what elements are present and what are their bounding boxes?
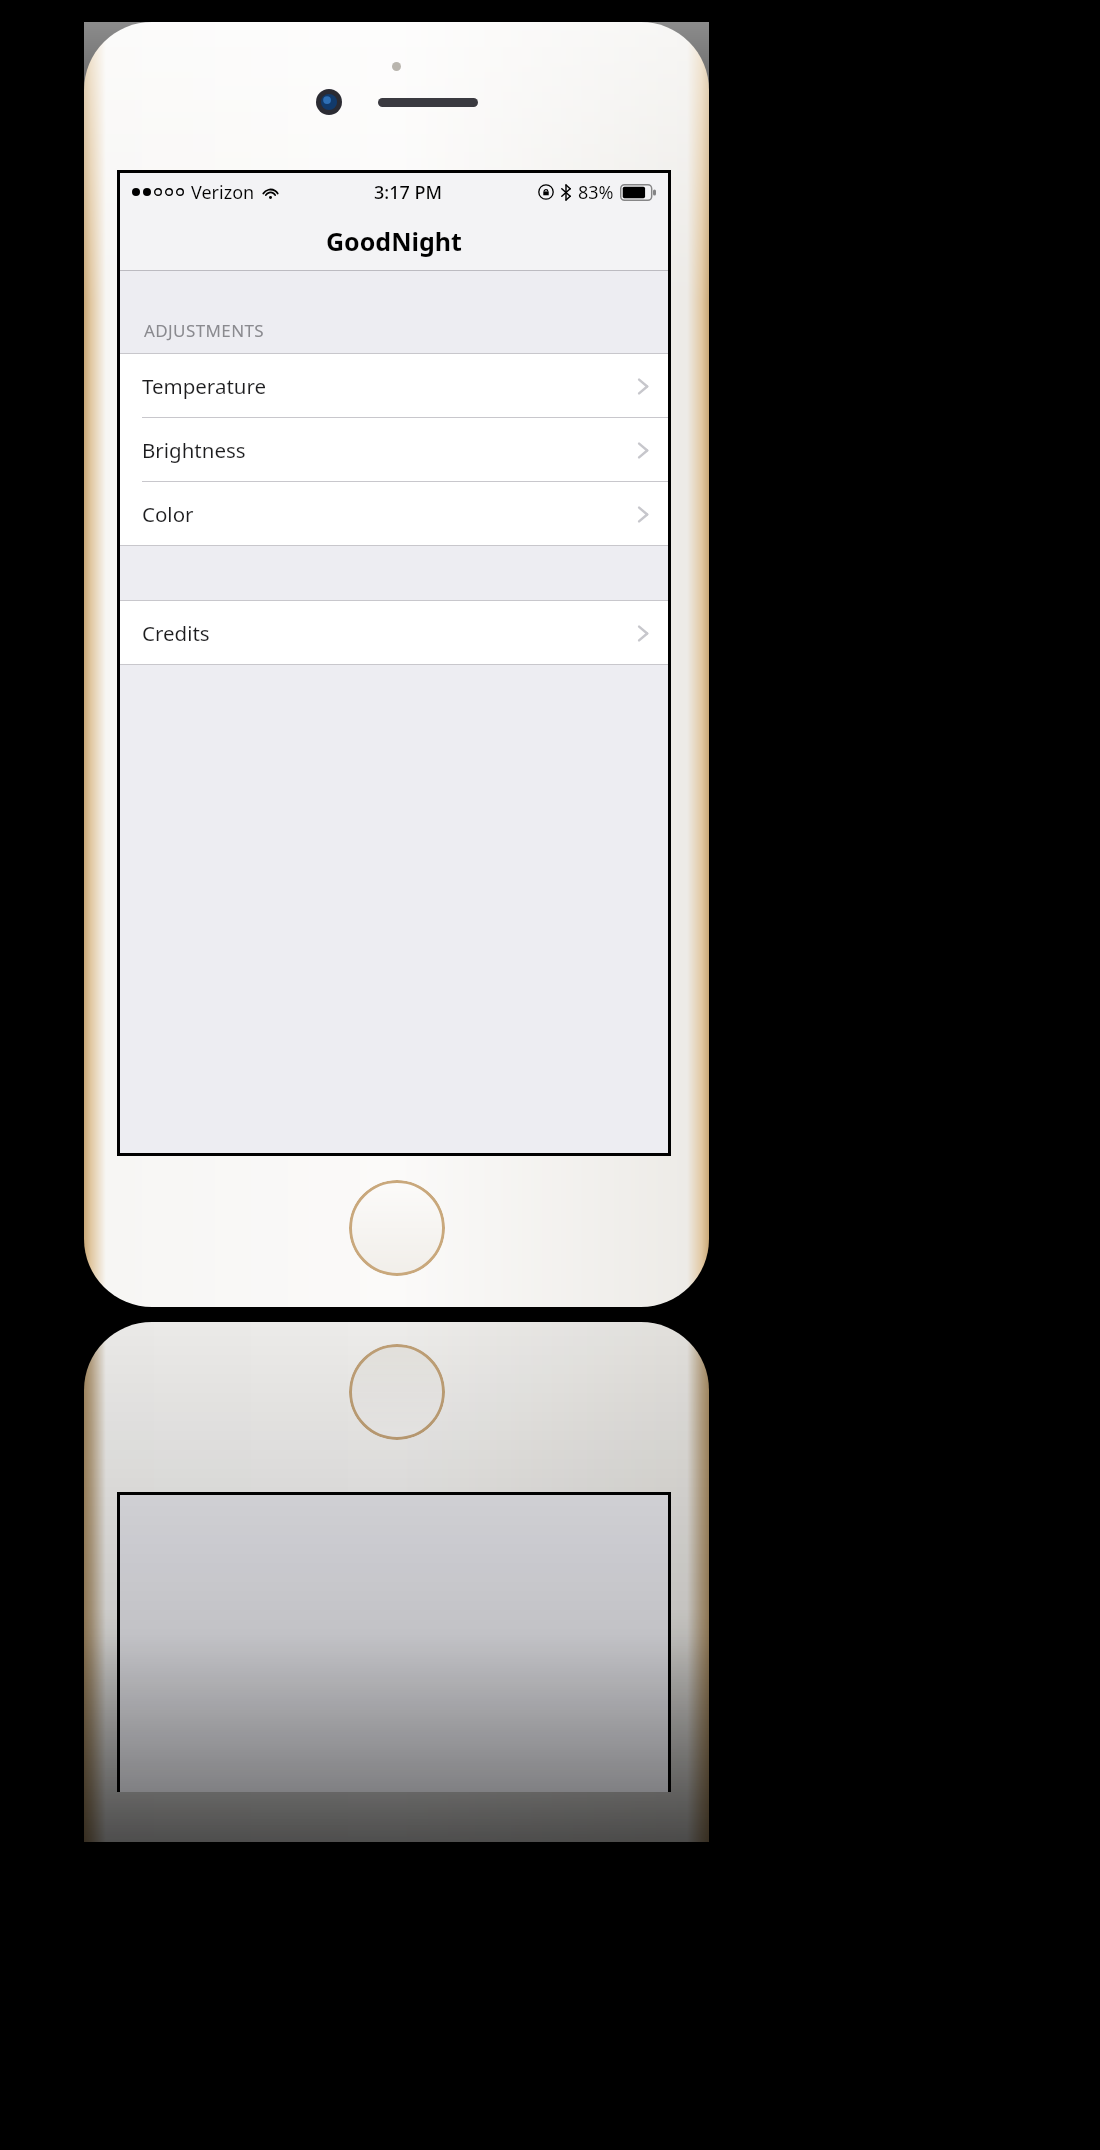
button[interactable]: Home: [349, 1180, 445, 1276]
button[interactable]: Color: [120, 482, 668, 546]
staticText: Color: [142, 500, 636, 528]
staticText: Brightness: [142, 436, 636, 464]
staticText: Temperature: [142, 372, 636, 400]
staticText: GoodNight: [326, 224, 462, 258]
staticText: Credits: [142, 619, 636, 647]
staticText: ADJUSTMENTS: [144, 319, 265, 342]
button[interactable]: Credits: [120, 601, 668, 665]
staticText: 3:17 PM: [374, 180, 442, 205]
staticText: 83%: [578, 180, 614, 205]
button[interactable]: Temperature: [120, 354, 668, 418]
button[interactable]: Brightness: [120, 418, 668, 482]
staticText: Verizon: [191, 180, 255, 205]
